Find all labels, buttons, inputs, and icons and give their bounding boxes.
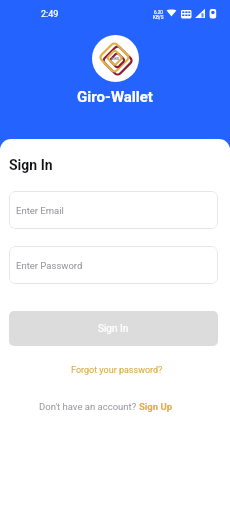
staticText: Sign Up bbox=[139, 401, 173, 412]
staticText: Sign In bbox=[98, 323, 129, 335]
button[interactable]: Sign Up bbox=[139, 401, 173, 412]
staticText: KB/S bbox=[153, 15, 164, 20]
button[interactable]: Enter Password bbox=[9, 246, 218, 284]
button[interactable]: Forgot your password? bbox=[67, 363, 167, 378]
staticText: Sign In bbox=[9, 157, 53, 173]
staticText: Forgot your password? bbox=[71, 365, 163, 376]
staticText: 2:49 bbox=[41, 9, 59, 20]
staticText: Enter Password bbox=[16, 260, 83, 271]
staticText: Giro-Wallet bbox=[77, 88, 153, 106]
staticText: 6.20 bbox=[154, 10, 163, 15]
staticText: Don't have an account? bbox=[39, 401, 139, 412]
staticText: Enter Email bbox=[16, 205, 64, 216]
button[interactable]: Enter Email bbox=[9, 191, 218, 229]
button[interactable]: Sign In bbox=[9, 311, 218, 346]
staticText: GIRO bbox=[111, 57, 120, 61]
